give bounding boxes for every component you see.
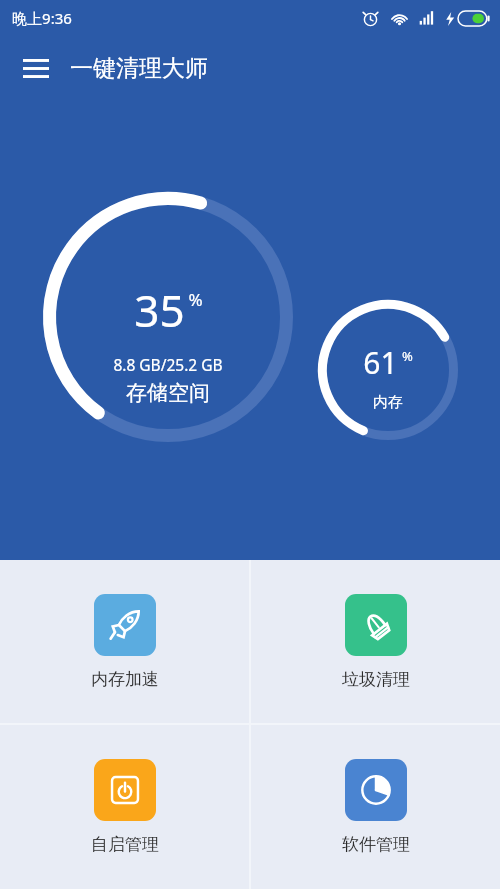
staticText: 一键清理大师 [70,54,208,83]
staticText: 8.8 GB/25.2 GB [113,354,223,375]
button[interactable]: 垃圾清理 [251,560,500,723]
staticText: 61 [363,342,398,383]
staticText: 35 [134,280,185,340]
staticText: 软件管理 [342,834,410,855]
button[interactable]: 自启管理 [0,725,249,889]
staticText: 晚上9:36 [12,8,72,28]
staticText: 垃圾清理 [342,669,410,690]
button[interactable]: 软件管理 [251,725,500,889]
button[interactable]: 35 [43,192,293,442]
staticText: 存储空间 [126,380,210,406]
button[interactable]: 内存加速 [0,560,249,723]
staticText: 内存加速 [91,669,159,690]
staticText: 内存 [373,393,403,412]
staticText: 自启管理 [91,834,159,855]
button[interactable]: 61 [318,300,458,440]
staticText: % [402,347,413,365]
button[interactable]: Menu [12,44,60,92]
staticText: % [188,288,203,311]
